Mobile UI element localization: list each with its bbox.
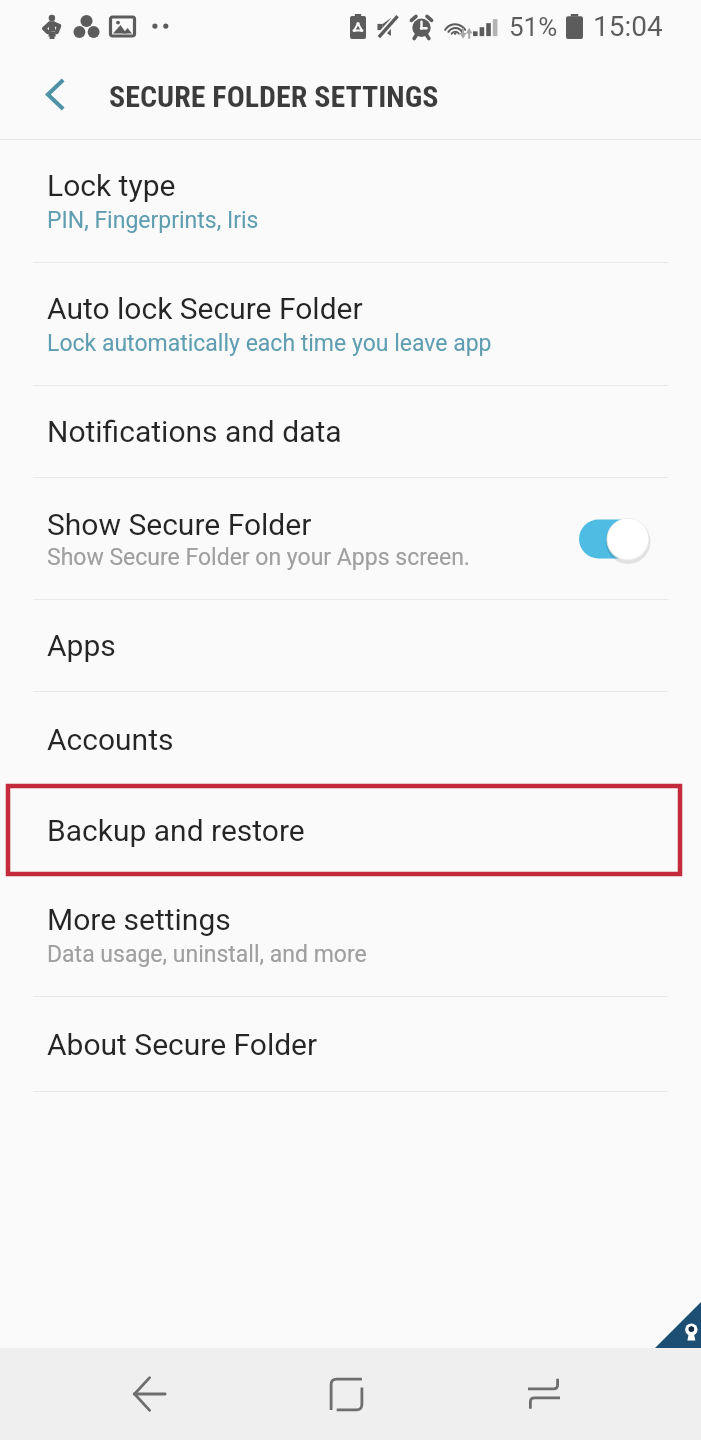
staticText: PIN, Fingerprints, Iris [47, 207, 259, 234]
button[interactable]: Apps [0, 600, 701, 691]
staticText: Accounts [47, 722, 174, 757]
button[interactable]: Backup and restore [0, 786, 701, 874]
staticText: Show Secure Folder [47, 507, 312, 542]
button[interactable]: Lock type [0, 140, 701, 262]
staticText: 51% [509, 12, 558, 42]
staticText: More settings [47, 902, 231, 937]
button[interactable]: Show Secure Folder [0, 478, 701, 599]
staticText: Lock type [47, 168, 176, 203]
staticText: Data usage, uninstall, and more [47, 941, 367, 968]
staticText: About Secure Folder [47, 1027, 318, 1062]
button[interactable]: Accounts [0, 692, 701, 786]
staticText: SECURE FOLDER SETTINGS [109, 79, 439, 114]
button[interactable]: Navigate up [28, 53, 83, 139]
button[interactable]: About Secure Folder [0, 997, 701, 1091]
button[interactable]: Recent apps [445, 1348, 642, 1440]
staticText: Notifications and data [47, 414, 342, 449]
staticText: Auto lock Secure Folder [47, 291, 363, 326]
staticText: Show Secure Folder on your Apps screen. [47, 544, 470, 571]
button[interactable]: Notifications and data [0, 386, 701, 477]
button[interactable]: Auto lock Secure Folder [0, 263, 701, 385]
button[interactable]: Show Secure Folder [579, 515, 652, 563]
staticText: Apps [47, 628, 116, 663]
button[interactable]: Home [248, 1348, 445, 1440]
staticText: 15:04 [593, 10, 663, 43]
button[interactable]: More settings [0, 874, 701, 996]
staticText: Backup and restore [47, 813, 305, 848]
staticText: Lock automatically each time you leave a… [47, 330, 492, 357]
button[interactable]: Back [51, 1348, 248, 1440]
